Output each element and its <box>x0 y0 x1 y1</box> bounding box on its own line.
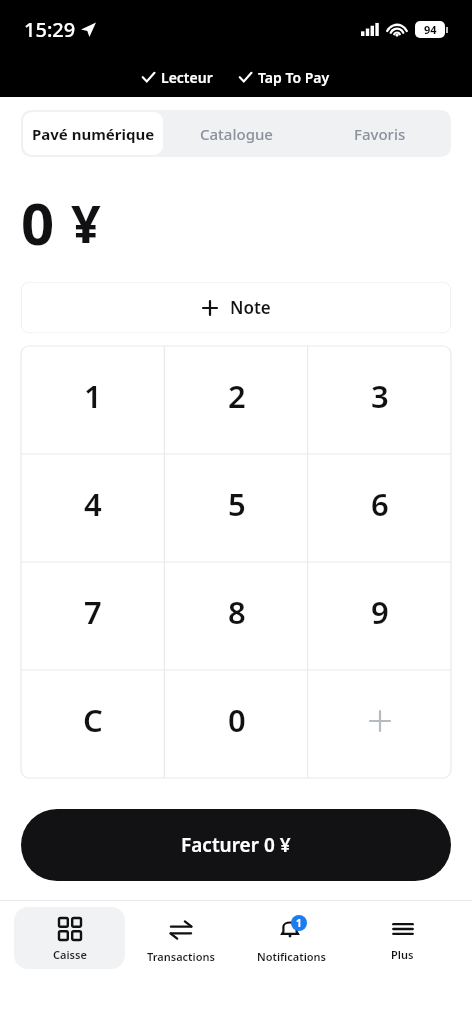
staticText: 0 <box>228 699 246 741</box>
button[interactable]: Plus <box>347 907 458 969</box>
staticText: Lecteur <box>161 68 213 87</box>
button[interactable] <box>308 670 451 778</box>
staticText: 3 <box>371 375 389 417</box>
staticText: 9 <box>371 591 389 633</box>
staticText: Notifications <box>257 949 327 964</box>
button[interactable]: 8 <box>165 562 308 670</box>
button[interactable]: 3 <box>308 346 451 454</box>
staticText: 7 <box>84 591 102 633</box>
staticText: 0 <box>21 183 55 262</box>
staticText: 4 <box>84 483 102 525</box>
button[interactable]: Pavé numérique <box>23 112 163 155</box>
button[interactable]: Caisse <box>14 907 125 969</box>
button[interactable]: 0 <box>165 670 308 778</box>
button[interactable]: Favoris <box>308 110 451 157</box>
button[interactable]: Note <box>21 282 451 333</box>
staticText: Note <box>230 296 271 319</box>
staticText: Tap To Pay <box>258 68 330 87</box>
button[interactable]: Lecteur <box>142 68 213 87</box>
button[interactable]: Transactions <box>125 907 236 969</box>
button[interactable]: Notifications <box>236 907 347 969</box>
other: Transactions <box>169 918 193 942</box>
button[interactable]: 1 <box>21 346 165 454</box>
staticText: Catalogue <box>200 124 273 144</box>
staticText: 1 <box>84 375 102 417</box>
button[interactable]: Tap To Pay <box>239 68 330 87</box>
other: Notifications <box>279 918 305 942</box>
button[interactable]: 5 <box>165 454 308 562</box>
staticText: 94 <box>424 22 437 37</box>
button[interactable]: Catalogue <box>165 110 308 157</box>
staticText: 8 <box>228 591 246 633</box>
button[interactable]: C <box>21 670 165 778</box>
other: Caisse <box>59 918 81 940</box>
button[interactable]: 2 <box>165 346 308 454</box>
staticText: 1 <box>296 916 302 930</box>
staticText: Favoris <box>354 124 406 144</box>
staticText: Facturer 0 ¥ <box>181 832 291 858</box>
button[interactable]: Facturer 0 ¥ <box>21 809 451 881</box>
staticText: Transactions <box>147 949 215 964</box>
staticText: ¥ <box>71 187 101 258</box>
button[interactable]: 7 <box>21 562 165 670</box>
staticText: 15:29 <box>24 16 76 43</box>
staticText: Plus <box>391 947 414 962</box>
staticText: Pavé numérique <box>32 124 155 144</box>
staticText: C <box>83 699 103 741</box>
staticText: Caisse <box>53 947 87 962</box>
button[interactable]: 4 <box>21 454 165 562</box>
staticText: 6 <box>371 483 389 525</box>
staticText: 2 <box>228 375 246 417</box>
button[interactable]: 6 <box>308 454 451 562</box>
other: Plus <box>392 918 414 940</box>
staticText: 5 <box>228 483 246 525</box>
button[interactable]: 9 <box>308 562 451 670</box>
